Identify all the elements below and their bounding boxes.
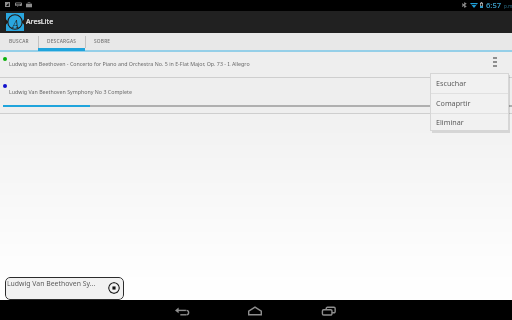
button[interactable]: Comaprtir (430, 93, 509, 113)
button[interactable]: Stop playback (108, 282, 120, 294)
button[interactable]: Recent apps (315, 300, 343, 320)
staticText: Ludwig van Beethoven - Concerto for Pian… (9, 60, 497, 67)
staticText: DESCARGAS (47, 38, 77, 45)
staticText: p.m. (504, 3, 512, 9)
staticText: Ludwig Van Beethoven Symphony No 3 Compl… (9, 88, 132, 95)
button[interactable]: Back (168, 300, 196, 320)
button[interactable]: Ludwig van Beethoven - Concerto for Pian… (0, 52, 512, 78)
staticText: Ludwig Van Beethoven Sy... (7, 279, 96, 288)
staticText: SOBRE (94, 38, 111, 45)
staticText: Escuchar (436, 78, 467, 88)
staticText: AresLite (26, 17, 54, 27)
button[interactable]: More options (488, 54, 502, 70)
staticText: Eliminar (436, 117, 464, 127)
button[interactable]: Escuchar (430, 73, 509, 93)
button[interactable]: Eliminar (430, 113, 509, 132)
button[interactable]: Ludwig Van Beethoven Symphony No 3 Compl… (0, 78, 512, 114)
staticText: 6:57 (486, 0, 502, 10)
button[interactable]: DESCARGAS (38, 33, 85, 49)
button[interactable]: Home (241, 300, 269, 320)
staticText: BUSCAR (9, 38, 29, 45)
button[interactable]: SOBRE (85, 33, 119, 49)
staticText: A (12, 17, 20, 31)
button[interactable]: Ludwig Van Beethoven Sy... (5, 277, 124, 300)
staticText: Comaprtir (436, 98, 471, 108)
button[interactable]: BUSCAR (0, 33, 38, 49)
